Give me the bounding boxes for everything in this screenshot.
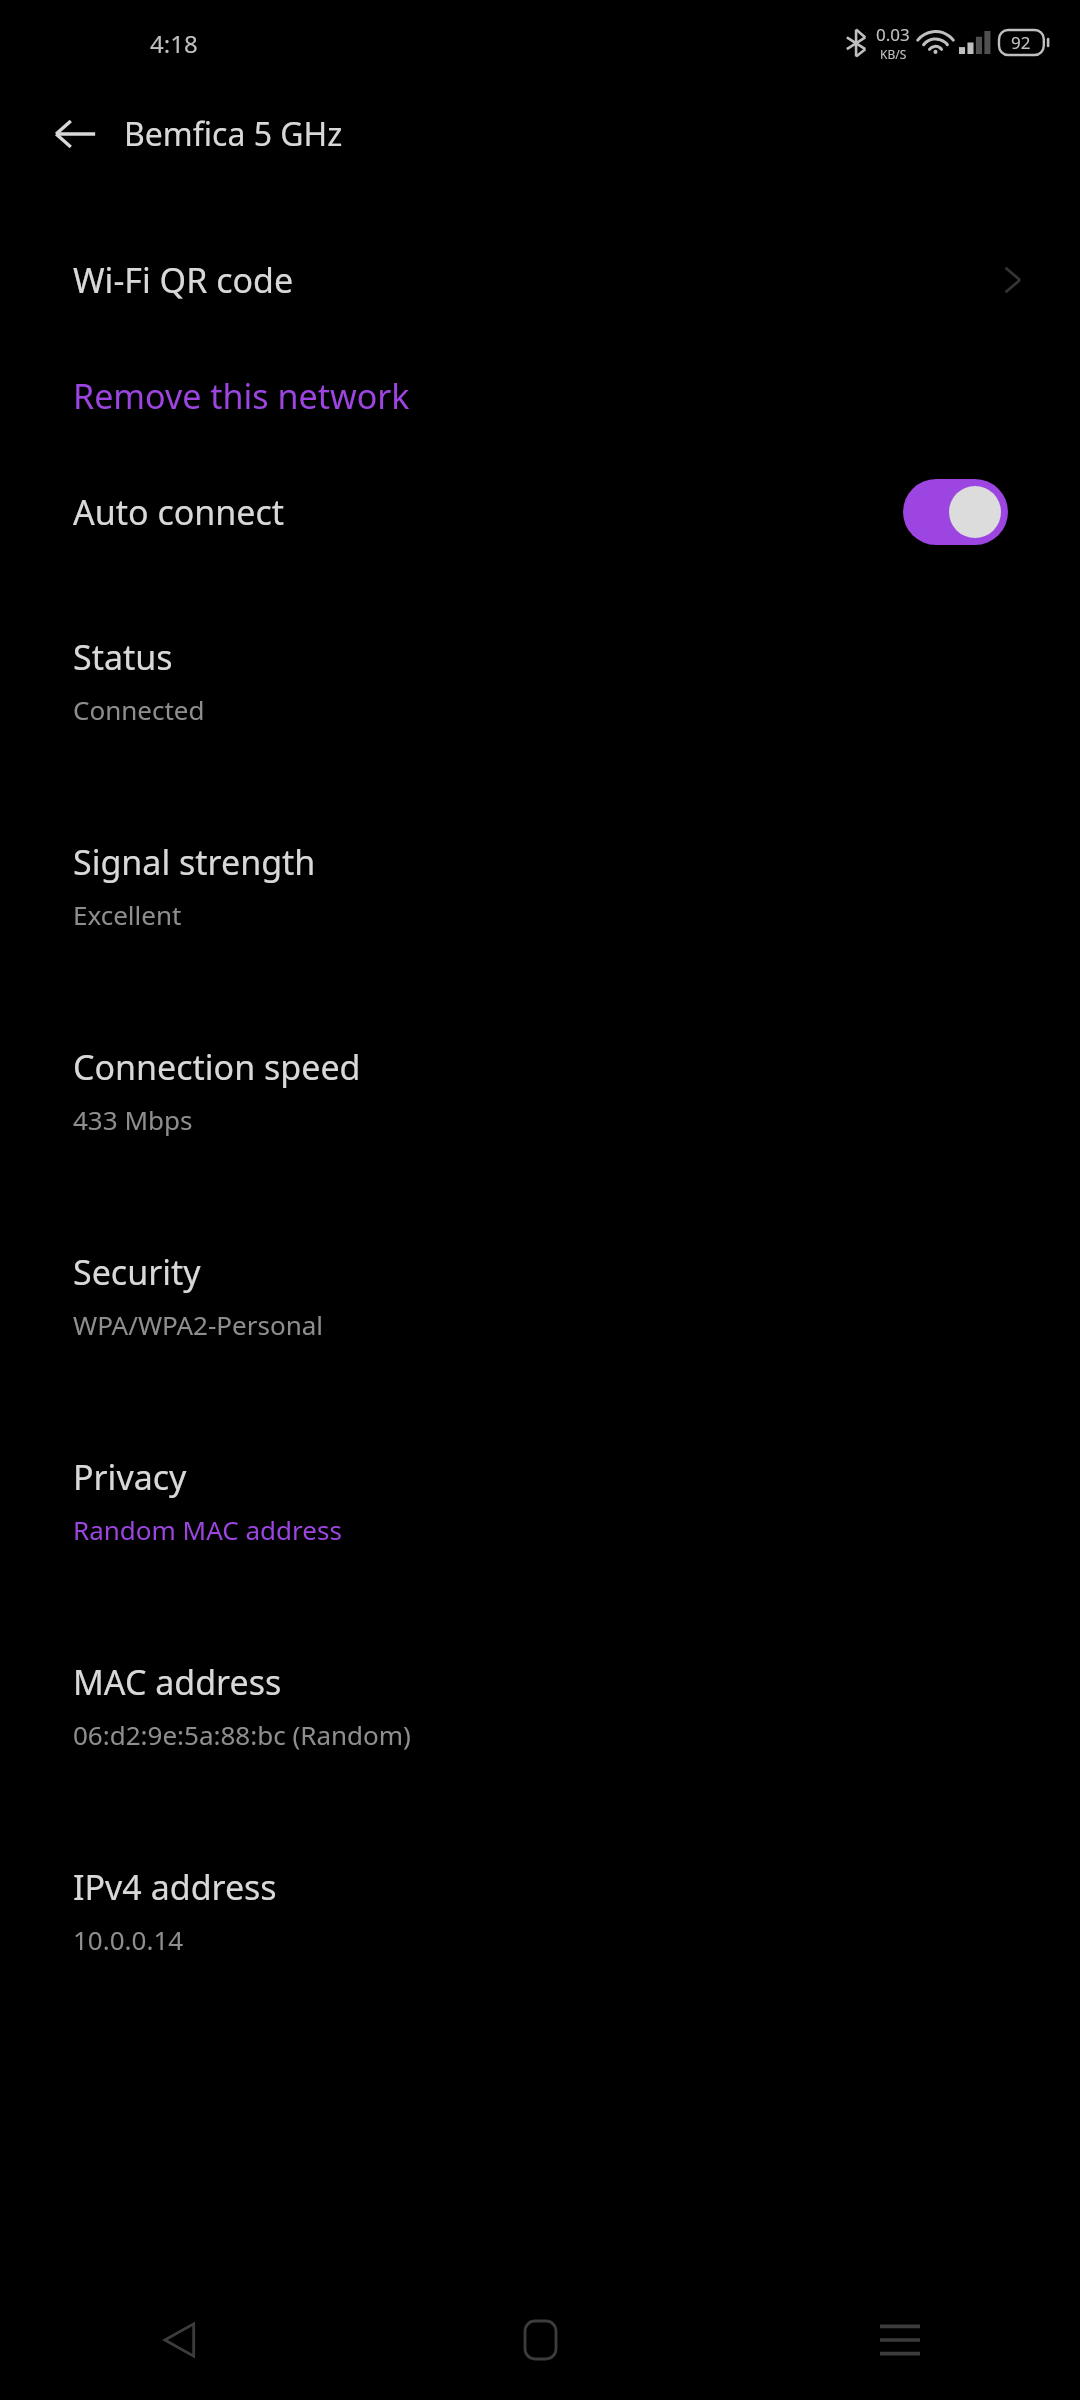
staticText: Excellent <box>73 897 182 932</box>
staticText: 10.0.0.14 <box>73 1922 184 1957</box>
button[interactable]: Home <box>360 2280 720 2400</box>
button[interactable]: Security <box>0 1193 1080 1398</box>
staticText: Remove this network <box>73 373 410 419</box>
staticText: Wi-Fi QR code <box>73 257 294 303</box>
staticText: IPv4 address <box>73 1864 277 1910</box>
button[interactable]: Signal strength <box>0 783 1080 988</box>
staticText: KB/S <box>880 46 907 62</box>
button[interactable]: Wi-Fi QR code <box>0 232 1080 328</box>
button[interactable]: Back <box>0 2280 360 2400</box>
staticText: 433 Mbps <box>73 1102 193 1137</box>
button[interactable]: IPv4 address <box>0 1808 1080 2013</box>
staticText: 06:d2:9e:5a:88:bc (Random) <box>73 1717 411 1752</box>
staticText: Security <box>73 1249 201 1295</box>
button[interactable]: Auto connect <box>0 456 1080 568</box>
staticText: MAC address <box>73 1659 282 1705</box>
button[interactable]: MAC address <box>0 1603 1080 1808</box>
staticText: 92 <box>1011 31 1031 54</box>
staticText: WPA/WPA2-Personal <box>73 1307 324 1342</box>
button[interactable]: Privacy <box>0 1398 1080 1603</box>
staticText: 4:18 <box>150 27 198 60</box>
staticText: Status <box>73 634 173 680</box>
button[interactable]: Connection speed <box>0 988 1080 1193</box>
staticText: Privacy <box>73 1454 187 1500</box>
staticText: Signal strength <box>73 839 316 885</box>
staticText: Bemfica 5 GHz <box>124 112 343 156</box>
button[interactable]: Back <box>46 105 104 163</box>
staticText: Random MAC address <box>73 1512 342 1547</box>
button[interactable]: Recent apps <box>720 2280 1080 2400</box>
staticText: Auto connect <box>73 489 285 535</box>
button[interactable]: Remove this network <box>0 348 1080 444</box>
button[interactable]: Status <box>0 578 1080 783</box>
staticText: Connected <box>73 692 205 727</box>
staticText: 0.03 <box>876 23 910 46</box>
staticText: Connection speed <box>73 1044 361 1090</box>
